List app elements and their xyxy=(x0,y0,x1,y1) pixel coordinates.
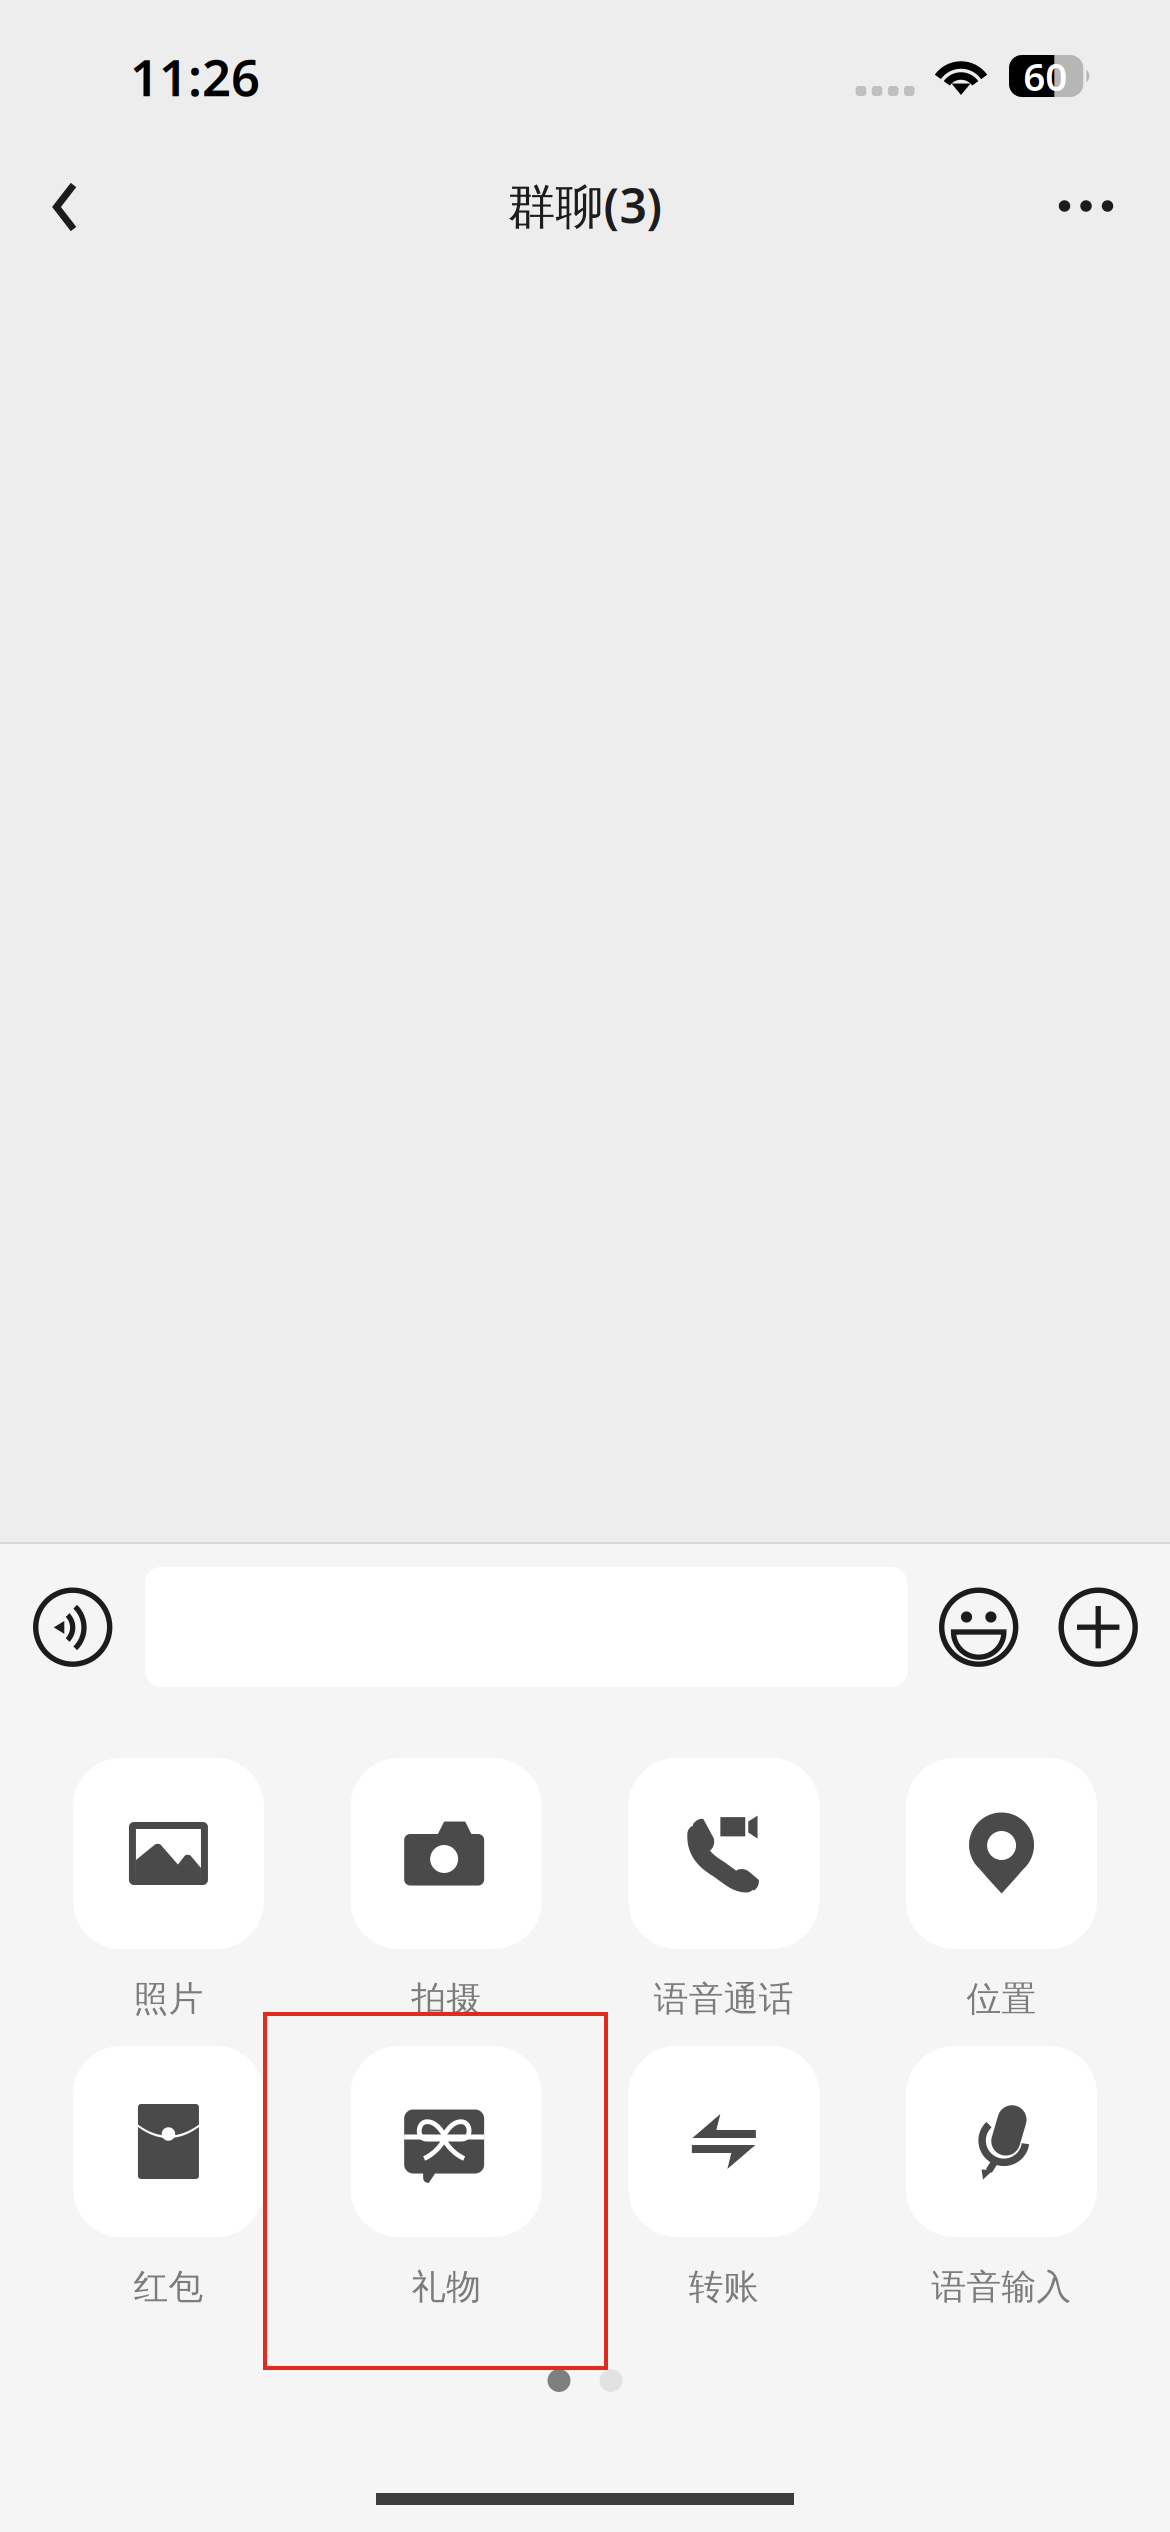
button[interactable]: Voice message xyxy=(0,1544,145,1710)
button[interactable]: Back xyxy=(0,145,130,277)
button[interactable]: 位置 xyxy=(906,1758,1097,2039)
staticText: 11:26 xyxy=(130,43,260,110)
staticText: 红包 xyxy=(133,2266,203,2308)
staticText: 拍摄 xyxy=(411,1978,481,2020)
button[interactable]: Emoji xyxy=(907,1544,1049,1710)
staticText: 转账 xyxy=(689,2266,759,2308)
button[interactable]: 礼物 xyxy=(351,2046,542,2327)
button[interactable]: 语音通话 xyxy=(628,1758,819,2039)
staticText: 语音输入 xyxy=(931,2266,1071,2308)
button[interactable]: 红包 xyxy=(73,2046,264,2327)
button[interactable]: 转账 xyxy=(628,2046,819,2327)
staticText: 位置 xyxy=(966,1978,1036,2020)
button[interactable]: 照片 xyxy=(73,1758,264,2039)
staticText: 群聊(3) xyxy=(507,173,662,237)
button[interactable]: More actions xyxy=(1049,1544,1146,1710)
staticText: 60 xyxy=(1023,50,1067,102)
button[interactable]: 语音输入 xyxy=(906,2046,1097,2327)
staticText: 语音通话 xyxy=(654,1978,794,2020)
staticText: 照片 xyxy=(133,1978,203,2020)
staticText: 礼物 xyxy=(411,2266,481,2308)
button[interactable]: More xyxy=(1030,145,1142,277)
button[interactable]: 拍摄 xyxy=(351,1758,542,2039)
